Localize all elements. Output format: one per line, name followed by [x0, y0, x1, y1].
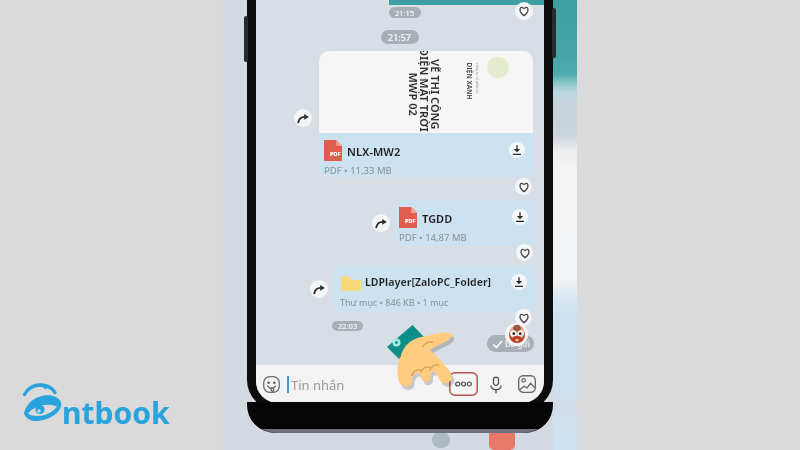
button[interactable]: Action [515, 178, 532, 195]
staticText: PDF • 11,33 MB [324, 164, 392, 177]
button[interactable]: More options [449, 372, 478, 396]
staticText: 22:03 [338, 321, 358, 331]
button[interactable]: Action [310, 280, 328, 298]
button[interactable]: Download [511, 274, 527, 290]
button[interactable]: Action [516, 244, 533, 261]
staticText: ĐIỆN MẶT TRỜI 7 [417, 51, 432, 133]
button[interactable]: Download [509, 142, 525, 158]
button[interactable]: Download [512, 209, 528, 225]
button[interactable]: LDPlayer[ZaloPC_Folder] [332, 265, 535, 312]
staticText: Tin nhắn [291, 376, 345, 394]
button[interactable]: Voice message [486, 375, 506, 395]
button[interactable]: Action [294, 109, 312, 127]
staticText: Đã gửi [505, 338, 530, 349]
staticText: PDF [405, 217, 416, 224]
button[interactable]: ntbook logo [22, 378, 130, 424]
staticText: Thư mục • 846 KB • 1 mục [340, 296, 449, 308]
staticText: PDF • 14,87 MB [399, 231, 467, 244]
button[interactable]: Action [372, 214, 390, 232]
staticText: LDPlayer[ZaloPC_Folder] [365, 275, 492, 289]
button[interactable]: Action [515, 2, 533, 20]
staticText: công ty cổ phần tư [475, 63, 480, 94]
button[interactable]: PDF [319, 133, 533, 177]
staticText: VẼ THI CÔNG [428, 59, 443, 130]
staticText: PDF [330, 150, 341, 157]
staticText: ntbook [62, 392, 170, 433]
staticText: 21:15 [395, 8, 415, 18]
button[interactable]: VẼ THI CÔNG [319, 51, 533, 133]
staticText: 21:57 [388, 31, 412, 43]
button[interactable]: Send photo [518, 375, 536, 393]
staticText: TGDD [422, 211, 453, 226]
button[interactable]: Reaction [505, 323, 528, 346]
button[interactable]: Action [515, 309, 532, 326]
button[interactable]: Emoji [261, 374, 281, 394]
button[interactable]: PDF [394, 200, 536, 246]
staticText: MWP 02 [405, 72, 420, 116]
staticText: DIỆN XANH [464, 62, 473, 100]
staticText: NLX-MW2 [347, 144, 401, 159]
